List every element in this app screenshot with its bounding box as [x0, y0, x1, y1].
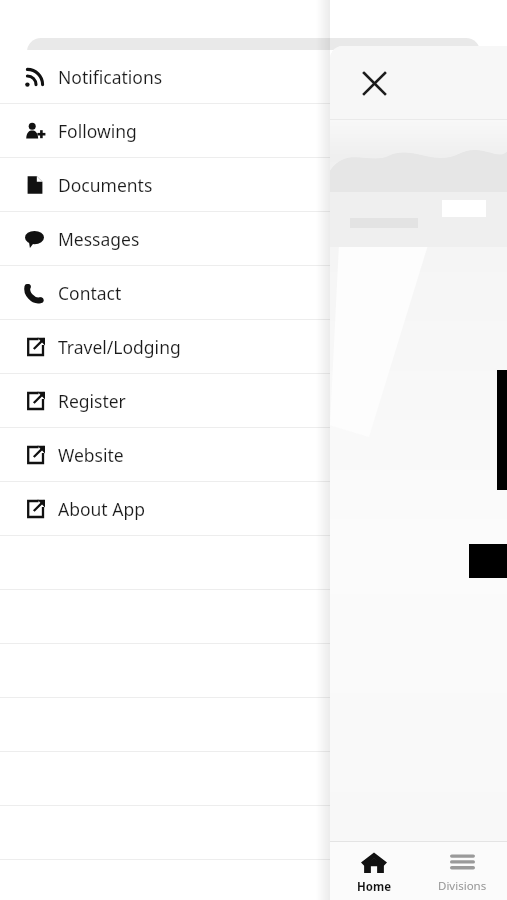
staticText: Following	[58, 119, 137, 143]
button[interactable]: Travel/Lodging	[0, 320, 507, 373]
button[interactable]: About App	[0, 482, 507, 535]
button[interactable]: Register	[0, 374, 507, 427]
button[interactable]: Following	[0, 104, 507, 157]
staticText: Messages	[58, 227, 140, 251]
staticText: Notifications	[58, 65, 163, 89]
staticText: Website	[58, 443, 124, 467]
staticText: Travel/Lodging	[58, 335, 181, 359]
button[interactable]: Website	[0, 428, 507, 481]
staticText: Register	[58, 389, 126, 413]
button[interactable]: Notifications	[0, 50, 507, 103]
staticText: Home	[357, 879, 392, 895]
button[interactable]: Close	[354, 63, 394, 103]
staticText: About App	[58, 497, 145, 521]
staticText: Documents	[58, 173, 153, 197]
staticText: Divisions	[438, 878, 487, 894]
button[interactable]: Documents	[0, 158, 507, 211]
button[interactable]: Divisions	[418, 842, 507, 900]
staticText: Contact	[58, 281, 122, 305]
button[interactable]: Home	[330, 842, 418, 900]
button[interactable]: Contact	[0, 266, 507, 319]
button[interactable]: Messages	[0, 212, 507, 265]
